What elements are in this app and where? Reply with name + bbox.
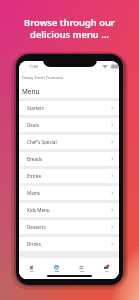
button[interactable]: Entrée (19, 169, 119, 183)
button[interactable]: Home (19, 265, 44, 276)
button[interactable]: Breads (19, 152, 119, 166)
button[interactable]: Chef's Special (19, 135, 119, 149)
staticText: Kids Menu (27, 207, 50, 213)
button[interactable]: Drinks (19, 237, 119, 251)
button[interactable]: Desserts (19, 220, 119, 234)
staticText: Chef's Special (27, 139, 57, 145)
staticText: Breads (27, 156, 42, 162)
button[interactable]: Orders (69, 265, 94, 276)
staticText: Deals (27, 122, 39, 128)
staticText: Starters (27, 105, 45, 111)
button[interactable]: Mains (19, 186, 119, 200)
staticText: Entrée (27, 173, 42, 179)
button[interactable]: Deals (19, 118, 119, 132)
staticText: Desserts (27, 224, 46, 230)
staticText: Mains (27, 190, 40, 196)
staticText: 11:00 (29, 64, 38, 69)
button[interactable]: Cart (94, 265, 119, 276)
staticText: Menu (22, 87, 40, 96)
button[interactable]: Kids Menu (19, 203, 119, 217)
staticText: Browse through our delicious menu ... (0, 16, 139, 41)
button[interactable]: Store (44, 265, 69, 276)
staticText: Drinks (27, 241, 41, 247)
button[interactable]: Starters (19, 101, 119, 115)
staticText: Deasy Fresh Fruitness (22, 75, 63, 80)
